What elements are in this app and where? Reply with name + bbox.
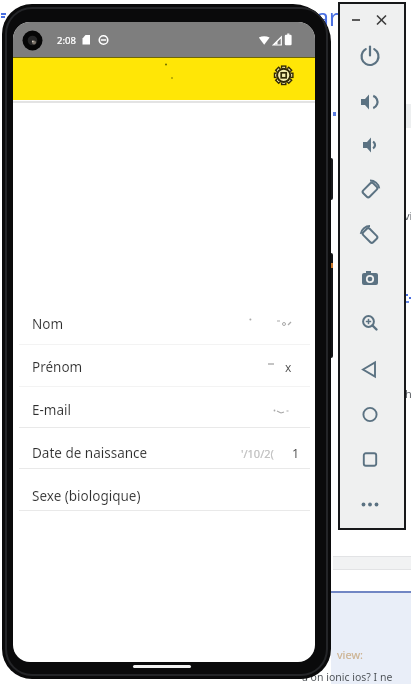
button[interactable] — [346, 14, 362, 30]
staticText: Prénom — [32, 358, 83, 376]
button[interactable] — [356, 131, 384, 159]
button[interactable] — [356, 401, 384, 429]
button[interactable]: Prénom — [13, 346, 315, 387]
staticText: Date de naissance — [32, 444, 148, 462]
staticText: Sexe (biologique) — [32, 487, 141, 505]
button[interactable] — [133, 665, 191, 668]
staticText: Nom — [32, 315, 64, 333]
button[interactable] — [356, 176, 384, 204]
staticText: ar — [316, 1, 339, 32]
staticText: h — [405, 386, 411, 401]
staticText: a on ionic ios? I ne — [302, 670, 393, 684]
button[interactable] — [356, 491, 384, 519]
button[interactable]: E-mail — [13, 389, 315, 430]
button[interactable] — [270, 61, 298, 89]
staticText: E-mail — [32, 401, 72, 419]
staticText: 1 — [292, 445, 300, 462]
staticText: x — [285, 359, 292, 375]
button[interactable] — [356, 88, 384, 116]
staticText: 2:08 — [57, 34, 76, 47]
staticText: view: — [337, 647, 364, 662]
button[interactable] — [356, 265, 384, 293]
button[interactable]: Sexe (biologique) — [13, 475, 315, 516]
button[interactable]: Nom — [13, 303, 315, 344]
button[interactable] — [356, 41, 384, 69]
staticText: vi — [404, 208, 411, 223]
button[interactable] — [356, 309, 384, 337]
button[interactable] — [374, 12, 390, 28]
button[interactable] — [356, 446, 384, 474]
button[interactable]: Date de naissance — [13, 432, 315, 473]
button[interactable] — [356, 356, 384, 384]
button[interactable] — [356, 222, 384, 250]
staticText: '/10/2( — [241, 446, 274, 461]
